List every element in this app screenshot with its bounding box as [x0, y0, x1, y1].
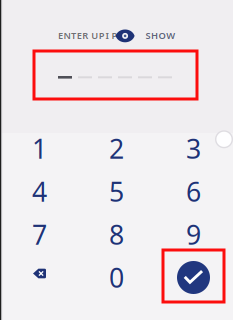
button[interactable]: 4 — [1, 170, 78, 213]
button[interactable]: 5 — [78, 170, 155, 213]
button[interactable]: 0 — [78, 256, 155, 299]
button[interactable]: 3 — [155, 127, 232, 170]
staticText: 8 — [109, 217, 124, 252]
staticText: 0 — [109, 260, 124, 295]
button[interactable]: 9 — [155, 213, 232, 256]
button[interactable]: Delete — [1, 256, 78, 299]
staticText: SHOW — [145, 29, 175, 42]
staticText: 6 — [186, 174, 201, 209]
button[interactable]: 6 — [155, 170, 232, 213]
staticText: 2 — [109, 131, 124, 166]
staticText: 5 — [109, 174, 124, 209]
button[interactable]: 1 — [1, 127, 78, 170]
staticText: 3 — [186, 131, 201, 166]
staticText: 4 — [32, 174, 47, 209]
button[interactable]: Confirm — [155, 256, 232, 299]
staticText: 1 — [32, 131, 47, 166]
staticText: 9 — [186, 217, 201, 252]
button[interactable]: 8 — [78, 213, 155, 256]
button[interactable]: SHOW — [145, 30, 185, 40]
staticText: 7 — [32, 217, 47, 252]
button[interactable]: 2 — [78, 127, 155, 170]
staticText: ENTER UPI PIN — [58, 29, 129, 42]
button[interactable]: Show PIN — [116, 30, 135, 41]
button[interactable]: 7 — [1, 213, 78, 256]
